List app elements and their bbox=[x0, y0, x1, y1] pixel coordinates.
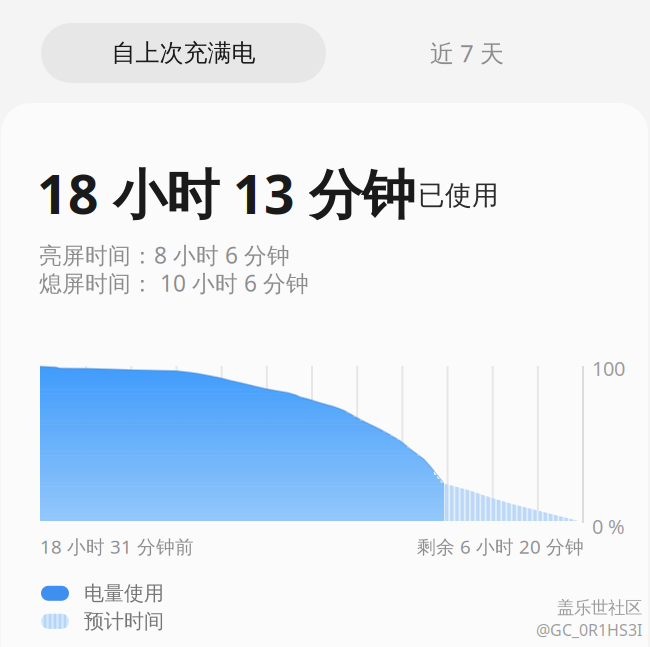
staticText: 18 小时 31 分钟前 bbox=[40, 534, 194, 559]
button[interactable]: 电量使用 bbox=[41, 581, 164, 606]
staticText: @GC_0R1HS3I bbox=[536, 619, 642, 640]
staticText: 自上次充满电 bbox=[111, 38, 255, 68]
staticText: 近 7 天 bbox=[430, 37, 504, 69]
staticText: 18 小时 13 分钟 bbox=[37, 158, 415, 229]
staticText: 已使用 bbox=[418, 179, 499, 212]
staticText: 100 bbox=[592, 355, 625, 382]
button[interactable]: 预计时间 bbox=[41, 609, 164, 634]
button[interactable]: 自上次充满电 bbox=[41, 23, 326, 83]
staticText: 剩余 6 小时 20 分钟 bbox=[417, 534, 584, 559]
staticText: 0 % bbox=[592, 513, 625, 540]
staticText: 亮屏时间：8 小时 6 分钟 bbox=[39, 240, 290, 270]
staticText: 预计时间 bbox=[84, 609, 164, 634]
button[interactable]: 近 7 天 bbox=[397, 23, 537, 83]
staticText: 盖乐世社区 bbox=[557, 597, 642, 618]
staticText: 电量使用 bbox=[84, 581, 164, 606]
staticText: 熄屏时间： 10 小时 6 分钟 bbox=[39, 268, 309, 298]
